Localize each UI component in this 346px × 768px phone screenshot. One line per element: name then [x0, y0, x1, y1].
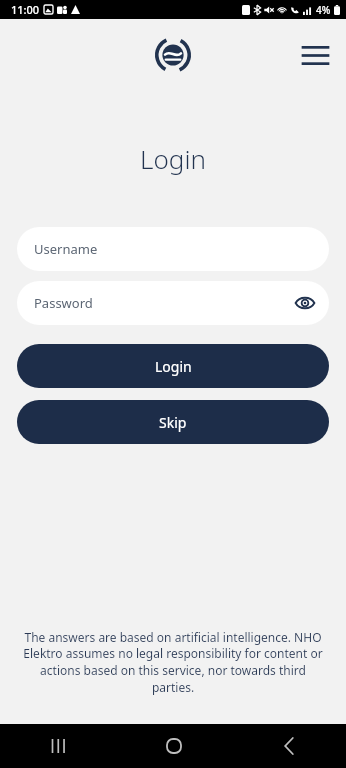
staticText: The answers are based on artificial inte…: [20, 629, 326, 696]
staticText: Password: [34, 294, 93, 312]
staticText: Skip: [159, 413, 187, 432]
staticText: 4%: [316, 3, 331, 17]
button[interactable]: Open navigation menu: [293, 33, 337, 77]
staticText: Username: [34, 240, 98, 258]
button[interactable]: NHO Elektro logo: [155, 37, 191, 73]
staticText: Login: [0, 141, 346, 176]
button[interactable]: Show password: [289, 287, 321, 319]
button[interactable]: Skip: [17, 400, 329, 444]
button[interactable]: Password: [17, 281, 329, 325]
button[interactable]: Username: [17, 227, 329, 271]
staticText: 11:00: [11, 2, 40, 17]
button[interactable]: Home: [116, 724, 231, 768]
button[interactable]: Login: [17, 344, 329, 388]
staticText: Login: [155, 357, 192, 376]
button[interactable]: Recent apps: [0, 724, 116, 768]
button[interactable]: Back: [231, 724, 346, 768]
